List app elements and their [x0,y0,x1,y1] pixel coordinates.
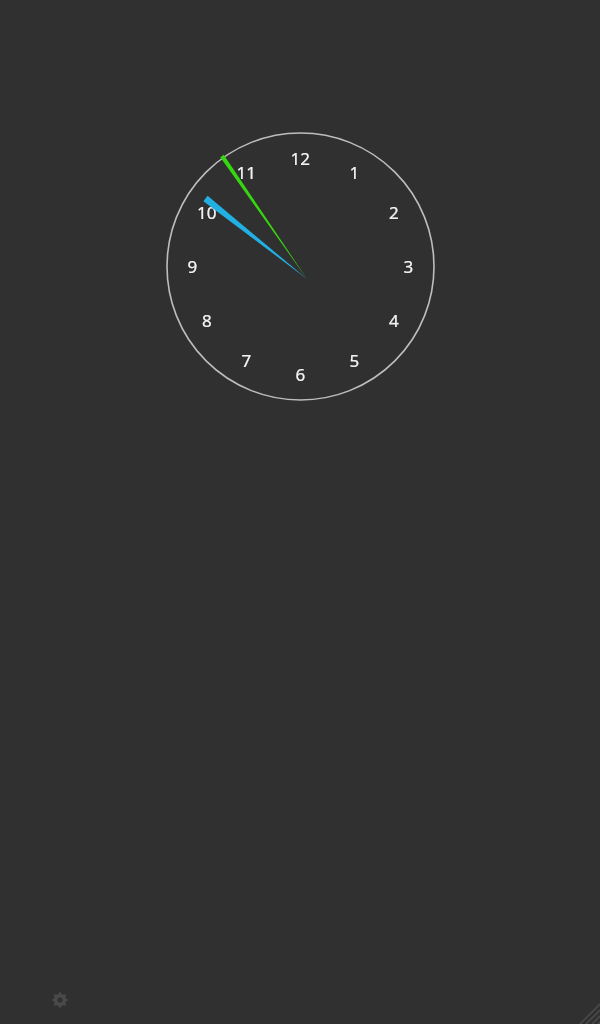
button[interactable]: Settings [44,984,76,1016]
button[interactable]: Analog clock [0,0,600,1024]
